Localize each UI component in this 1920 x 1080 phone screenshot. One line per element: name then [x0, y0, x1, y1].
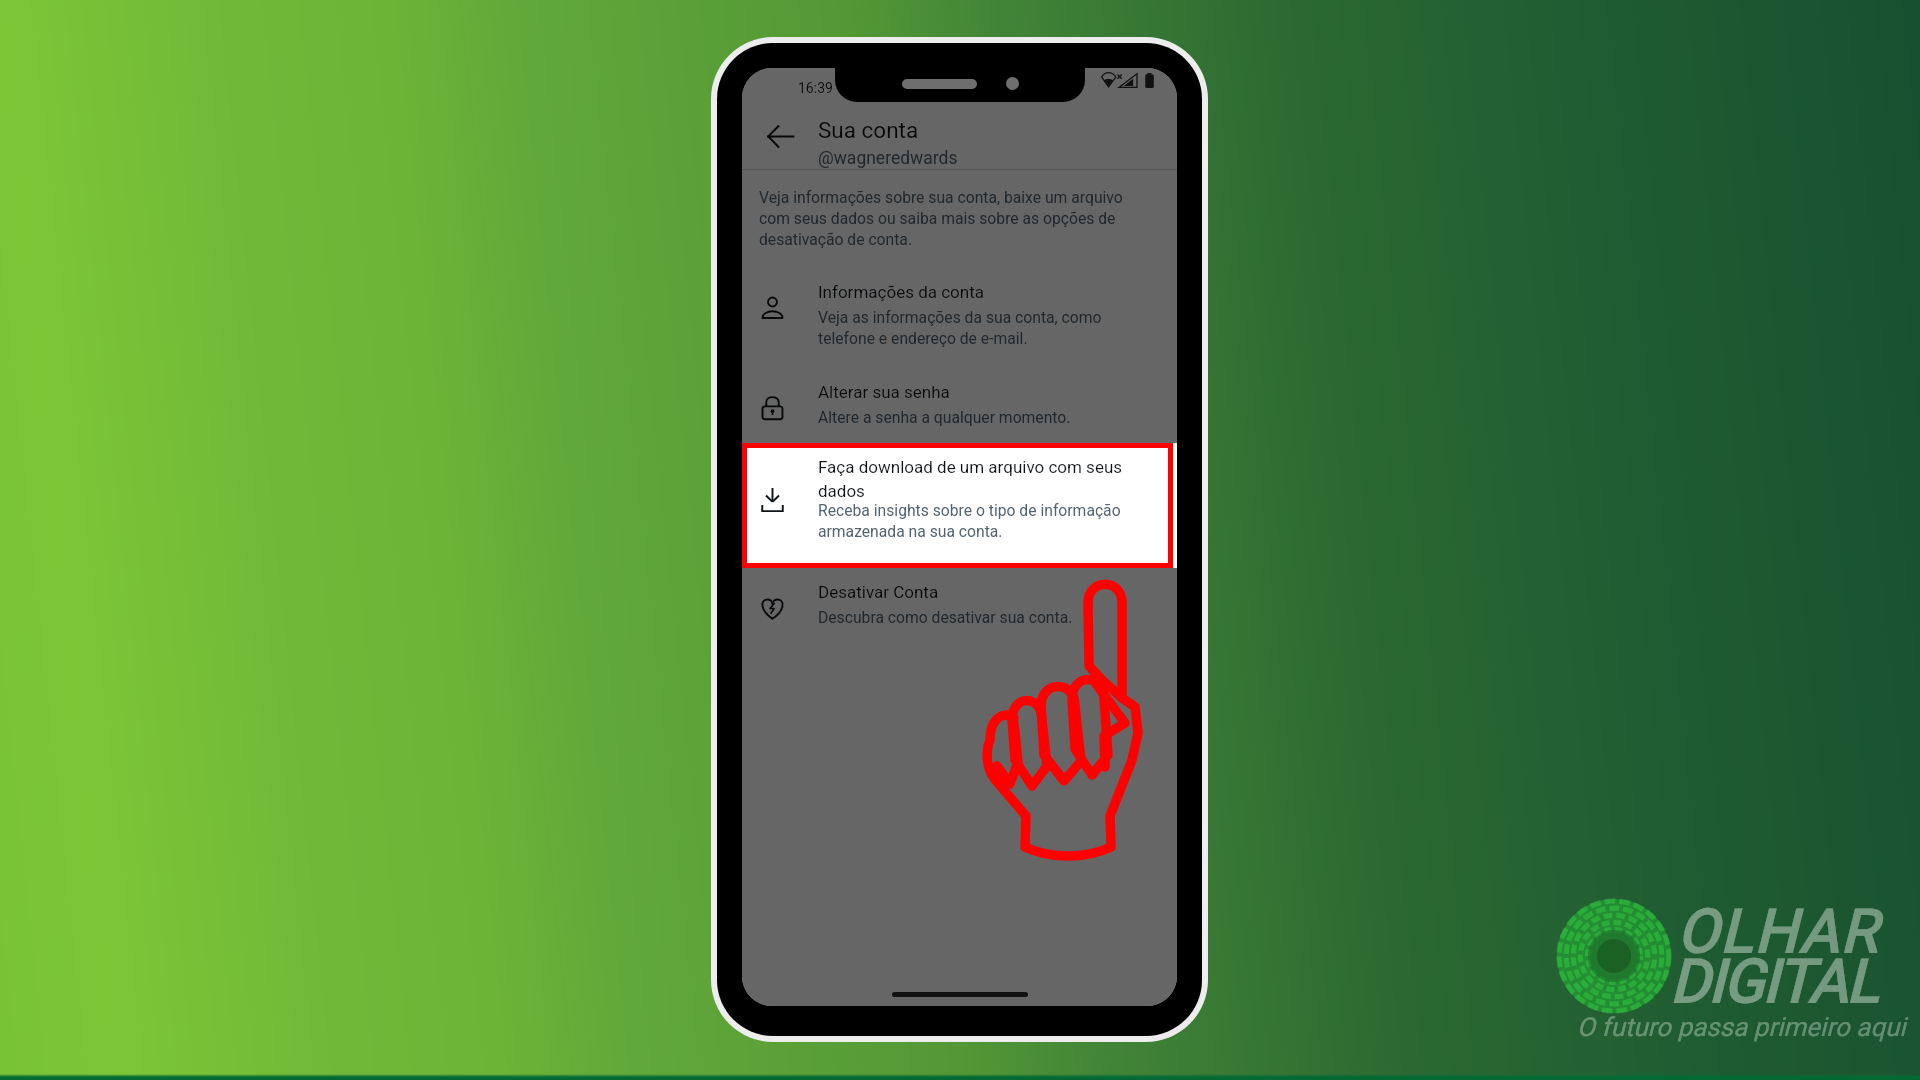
staticText: OLHAR [1677, 896, 1880, 966]
staticText: O futuro passa primeiro aqui [1577, 1012, 1906, 1042]
button[interactable]: Informações da conta [742, 280, 1177, 352]
button[interactable]: Back [742, 103, 818, 169]
staticText: Informações da conta [818, 282, 984, 302]
button[interactable]: Desativar Conta [742, 580, 1177, 652]
button[interactable]: Faça download de um arquivo com seus dad… [742, 443, 1177, 568]
staticText: Veja as informações da sua conta, como t… [818, 306, 1128, 348]
staticText: 16:39 [798, 80, 833, 96]
staticText: Receba insights sobre o tipo de informaç… [818, 499, 1148, 541]
staticText: Desativar Conta [818, 582, 939, 602]
staticText: Altere a senha a qualquer momento. [818, 406, 1148, 427]
staticText: Sua conta [818, 117, 919, 143]
staticText: Descubra como desativar sua conta. [818, 606, 1148, 627]
staticText: @wagneredwards [818, 148, 958, 169]
staticText: DIGITAL [1670, 946, 1878, 1016]
button[interactable]: Alterar sua senha [742, 380, 1177, 452]
staticText: Alterar sua senha [818, 382, 950, 402]
staticText: Veja informações sobre sua conta, baixe … [759, 186, 1139, 249]
staticText: Faça download de um arquivo com seus dad… [818, 454, 1140, 502]
